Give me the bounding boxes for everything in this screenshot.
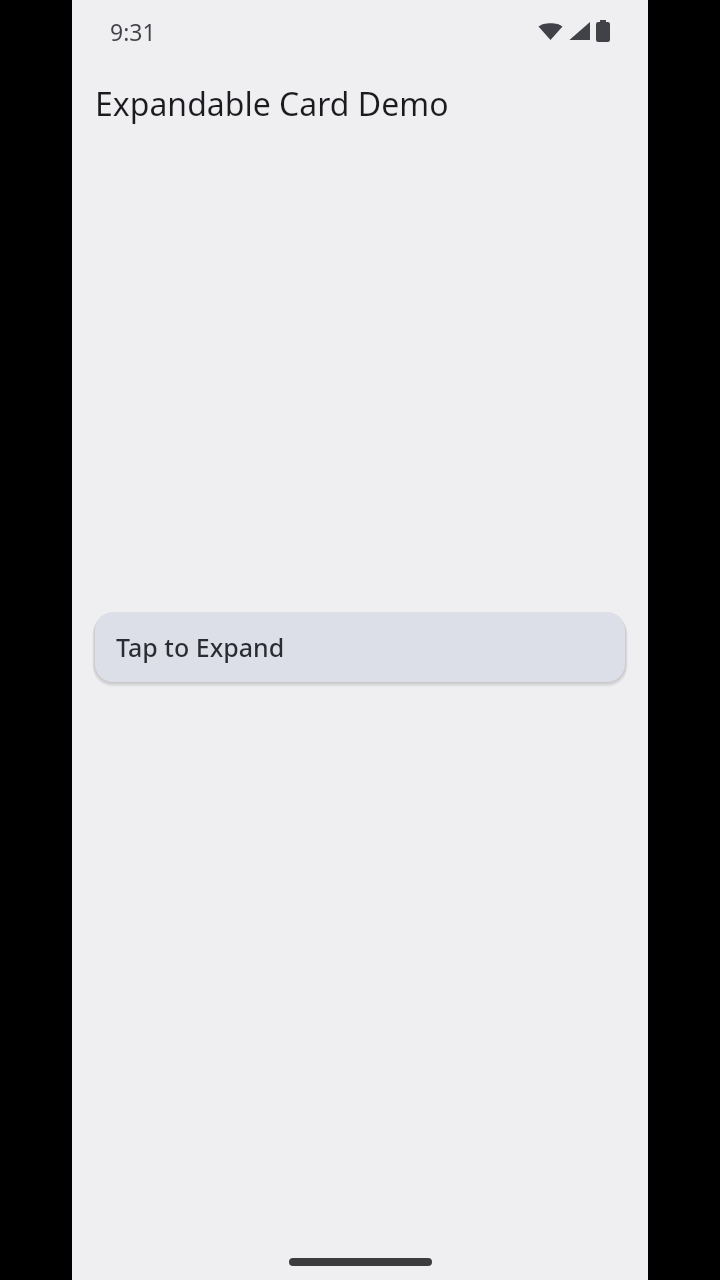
other: Home gesture handle [289, 1258, 432, 1266]
staticText: 9:31 [110, 16, 156, 47]
staticText: Expandable Card Demo [95, 82, 449, 126]
button[interactable]: Tap to Expand [95, 612, 625, 682]
staticText: Tap to Expand [116, 630, 285, 664]
